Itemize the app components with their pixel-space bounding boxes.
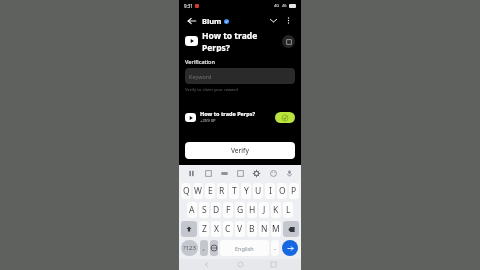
staticText: U (255, 185, 262, 197)
staticText: ?123 (183, 244, 196, 252)
button[interactable]: . (271, 240, 279, 256)
staticText: . (274, 243, 276, 253)
staticText: D (213, 204, 220, 216)
button[interactable]: A (187, 202, 197, 218)
button[interactable]: V (235, 221, 245, 237)
staticText: 4G (274, 3, 280, 8)
staticText: 46 (282, 3, 287, 8)
button[interactable]: Keyboard tool 5 (266, 166, 280, 180)
staticText: G (237, 204, 244, 216)
staticText: How to trade Perps? (200, 110, 256, 117)
button[interactable]: G (235, 202, 245, 218)
button[interactable]: R (217, 183, 227, 199)
button[interactable]: Recents (268, 259, 279, 270)
staticText: E (208, 185, 213, 197)
staticText: T (232, 185, 237, 197)
button[interactable]: Shift (181, 221, 197, 237)
staticText: Y (244, 185, 249, 197)
staticText: +259 XP (200, 118, 216, 124)
button[interactable]: Language (210, 240, 218, 256)
staticText: X (214, 223, 219, 235)
staticText: B (249, 223, 255, 235)
staticText: H (249, 204, 256, 216)
staticText: Verify to claim your reward (185, 87, 238, 93)
staticText: How to trade Perps? (202, 30, 282, 52)
button[interactable]: J (259, 202, 269, 218)
button[interactable]: Share (282, 35, 295, 48)
staticText: S (202, 204, 207, 216)
button[interactable]: D (211, 202, 221, 218)
button[interactable]: Keyboard tool 0 (184, 166, 198, 180)
button[interactable]: X (211, 221, 221, 237)
staticText: O (279, 185, 286, 197)
button[interactable]: Y (241, 183, 251, 199)
staticText: Keyword (189, 73, 212, 80)
staticText: K (273, 204, 279, 216)
button[interactable]: Keyboard tool 1 (201, 166, 215, 180)
button[interactable]: Verify (185, 142, 295, 159)
staticText: C (225, 223, 231, 235)
button[interactable]: K (271, 202, 281, 218)
staticText: R (219, 185, 225, 197)
button[interactable]: W (193, 183, 203, 199)
button[interactable]: Emoji (200, 240, 208, 256)
button[interactable]: ?123 (181, 240, 198, 256)
button[interactable]: S (199, 202, 209, 218)
button[interactable]: More options (282, 14, 295, 27)
staticText: L (286, 204, 291, 216)
button[interactable]: Blum (202, 16, 229, 26)
staticText: 9:31 (184, 3, 193, 9)
button[interactable]: Completed (275, 112, 295, 123)
button[interactable]: L (283, 202, 293, 218)
button[interactable]: Backspace (283, 221, 299, 237)
button[interactable]: Back (185, 14, 198, 27)
button[interactable]: M (271, 221, 281, 237)
staticText: Blum (202, 16, 222, 26)
staticText: V (237, 223, 243, 235)
staticText: M (272, 223, 280, 235)
button[interactable]: Q (181, 183, 191, 199)
staticText: A (189, 204, 195, 216)
button[interactable]: U (253, 183, 263, 199)
button[interactable]: Send (282, 240, 298, 256)
button[interactable]: English (220, 240, 269, 256)
button[interactable]: C (223, 221, 233, 237)
staticText: Z (202, 223, 207, 235)
button[interactable]: How to trade Perps? (179, 106, 301, 128)
button[interactable]: Z (199, 221, 209, 237)
button[interactable]: T (229, 183, 239, 199)
button[interactable]: Expand (267, 14, 280, 27)
button[interactable]: N (259, 221, 269, 237)
button[interactable]: B (247, 221, 257, 237)
staticText: P (291, 185, 297, 197)
staticText: , (203, 243, 205, 253)
button[interactable]: Keyboard tool 6 (282, 166, 296, 180)
button[interactable]: E (205, 183, 215, 199)
staticText: N (261, 223, 268, 235)
staticText: Verify (231, 146, 249, 155)
staticText: F (226, 204, 231, 216)
button[interactable]: Keyword (185, 68, 295, 84)
staticText: I (269, 185, 272, 197)
button[interactable]: O (277, 183, 287, 199)
button[interactable]: H (247, 202, 257, 218)
staticText: W (194, 185, 202, 197)
button[interactable]: F (223, 202, 233, 218)
staticText: Q (183, 185, 190, 197)
button[interactable]: I (265, 183, 275, 199)
staticText: J (263, 204, 266, 216)
button[interactable]: P (289, 183, 299, 199)
button[interactable]: Keyboard tool 4 (249, 166, 263, 180)
button[interactable]: Keyboard tool 2 (217, 166, 231, 180)
button[interactable]: Back (201, 259, 212, 270)
button[interactable]: Keyboard tool 3 (233, 166, 247, 180)
staticText: Verification (185, 58, 215, 65)
staticText: English (235, 245, 254, 252)
button[interactable]: Home (235, 259, 246, 270)
